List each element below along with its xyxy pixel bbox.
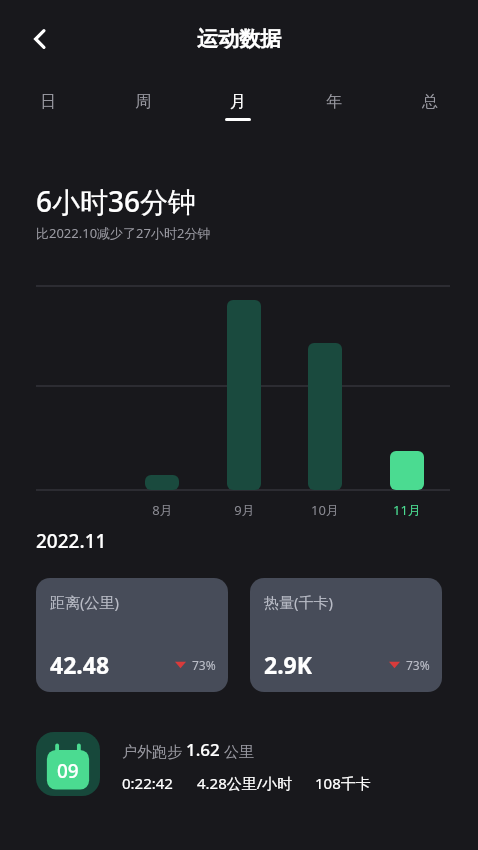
staticText: 1.62 [186, 738, 220, 761]
button[interactable]: 距离(公里) [36, 578, 228, 692]
button[interactable]: 09 [36, 732, 454, 796]
staticText: 距离(公里) [50, 592, 120, 612]
staticText: 11月 [393, 501, 421, 519]
button[interactable]: 月 [190, 78, 286, 134]
staticText: 4.28公里/小时 [197, 773, 293, 793]
button[interactable]: Back [16, 15, 64, 63]
staticText: 73% [192, 657, 216, 673]
staticText: 09 [57, 758, 79, 784]
staticText: 6小时36分钟 [36, 182, 197, 220]
staticText: 热量(千卡) [264, 592, 334, 612]
staticText: 运动数据 [197, 26, 281, 52]
staticText: 9月 [234, 501, 255, 519]
staticText: 户外跑步 [122, 741, 186, 761]
staticText: 日 [40, 92, 56, 112]
staticText: 公里 [220, 741, 254, 761]
staticText: 0:22:42 [122, 773, 173, 793]
staticText: 10月 [311, 501, 339, 519]
staticText: 108千卡 [315, 773, 371, 793]
button[interactable]: 日 [0, 78, 95, 134]
staticText: 2.9K [264, 649, 313, 680]
button[interactable]: 总 [382, 78, 478, 134]
staticText: 周 [135, 92, 151, 112]
staticText: 73% [406, 657, 430, 673]
staticText: 8月 [152, 501, 173, 519]
button[interactable]: 周 [95, 78, 190, 134]
staticText: 年 [326, 92, 342, 112]
staticText: 比2022.10减少了27小时2分钟 [36, 224, 211, 242]
button[interactable]: 热量(千卡) [250, 578, 442, 692]
staticText: 42.48 [50, 649, 110, 680]
button[interactable]: 年 [286, 78, 382, 134]
staticText: 总 [422, 92, 438, 112]
staticText: 2022.11 [36, 528, 107, 554]
staticText: 月 [230, 92, 246, 112]
